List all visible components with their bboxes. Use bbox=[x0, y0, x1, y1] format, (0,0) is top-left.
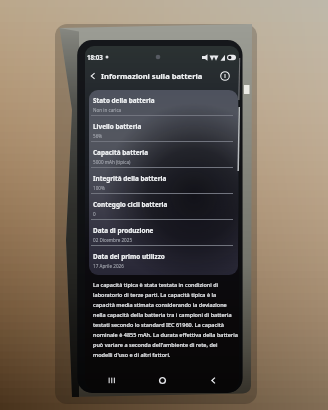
staticText: 17 Aprile 2026 bbox=[93, 263, 124, 269]
staticText: 56% bbox=[93, 133, 103, 139]
staticText: 5000 mAh (tipica) bbox=[93, 159, 131, 165]
button[interactable]: Home bbox=[137, 373, 188, 387]
staticText: La capacità tipica è stata testata in co… bbox=[93, 281, 238, 359]
staticText: Data del primo utilizzo bbox=[93, 252, 165, 261]
button[interactable]: Data del primo utilizzo bbox=[89, 246, 238, 272]
button[interactable]: Back bbox=[188, 373, 239, 387]
button[interactable]: Info bbox=[218, 69, 232, 83]
staticText: 18:03 bbox=[87, 53, 103, 61]
staticText: 0 bbox=[93, 211, 96, 217]
button[interactable]: Conteggio cicli batteria bbox=[89, 194, 238, 220]
button[interactable]: Back bbox=[86, 69, 100, 83]
staticText: Capacità batteria bbox=[93, 148, 149, 157]
staticText: Non in carica bbox=[93, 107, 122, 113]
staticText: Integrità della batteria bbox=[93, 174, 167, 183]
button[interactable]: Stato della batteria bbox=[89, 90, 238, 116]
staticText: 100% bbox=[93, 185, 105, 191]
staticText: Stato della batteria bbox=[93, 96, 155, 105]
staticText: Conteggio cicli batteria bbox=[93, 200, 168, 209]
staticText: 02 Dicembre 2025 bbox=[93, 237, 133, 243]
staticText: Informazioni sulla batteria bbox=[101, 71, 203, 81]
button[interactable]: Data di produzione bbox=[89, 220, 238, 246]
staticText: Data di produzione bbox=[93, 226, 154, 235]
button[interactable]: Capacità batteria bbox=[89, 142, 238, 168]
button[interactable]: Recents bbox=[85, 373, 137, 387]
staticText: Livello batteria bbox=[93, 122, 142, 131]
button[interactable]: Livello batteria bbox=[89, 116, 238, 142]
button[interactable]: Integrità della batteria bbox=[89, 168, 238, 194]
